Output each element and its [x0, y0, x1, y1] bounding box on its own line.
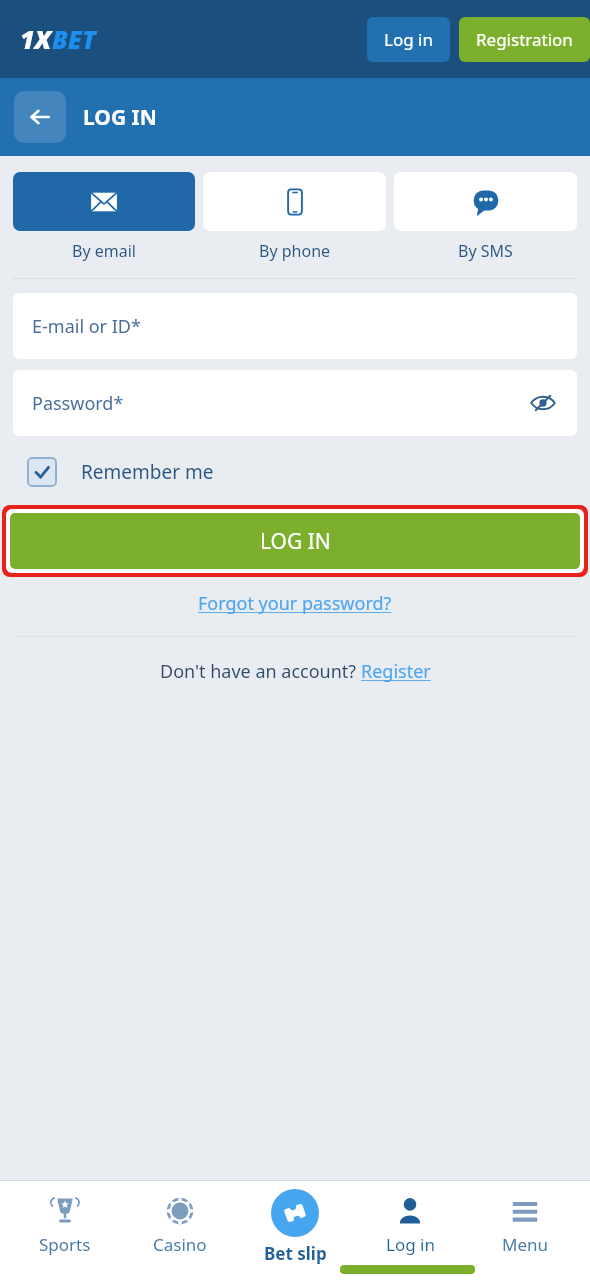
- staticText: BET: [52, 22, 96, 56]
- staticText: Remember me: [81, 459, 214, 485]
- button[interactable]: Sports: [15, 1181, 115, 1256]
- button[interactable]: By email: [13, 172, 195, 262]
- staticText: Register: [361, 659, 431, 684]
- button[interactable]: By SMS: [394, 172, 577, 262]
- staticText: Registration: [476, 28, 573, 51]
- staticText: By phone: [259, 240, 331, 262]
- button[interactable]: Register: [361, 659, 431, 684]
- staticText: By email: [72, 240, 136, 262]
- staticText: 1X: [20, 22, 52, 56]
- button[interactable]: Back: [14, 91, 66, 143]
- button[interactable]: Log in: [360, 1181, 460, 1256]
- staticText: Menu: [502, 1233, 549, 1256]
- staticText: LOG IN: [260, 527, 331, 556]
- staticText: Don't have an account?: [160, 659, 361, 684]
- staticText: Casino: [153, 1233, 207, 1256]
- button[interactable]: By phone: [203, 172, 386, 262]
- button[interactable]: Forgot your password?: [198, 591, 392, 616]
- button[interactable]: Menu: [475, 1181, 575, 1256]
- staticText: Bet slip: [264, 1242, 327, 1265]
- button[interactable]: Log in: [367, 17, 450, 62]
- button[interactable]: Casino: [130, 1181, 230, 1256]
- button[interactable]: Bet slip: [245, 1181, 345, 1265]
- staticText: Log in: [384, 28, 433, 51]
- button[interactable]: Password*: [13, 370, 577, 436]
- staticText: E-mail or ID*: [32, 314, 141, 339]
- staticText: Log in: [386, 1233, 435, 1256]
- button[interactable]: Registration: [459, 17, 590, 62]
- button[interactable]: LOG IN: [10, 513, 580, 569]
- button[interactable]: Show password: [525, 385, 561, 421]
- button[interactable]: Remember me: [27, 457, 214, 487]
- button[interactable]: E-mail or ID*: [13, 293, 577, 359]
- staticText: Sports: [39, 1233, 91, 1256]
- staticText: Forgot your password?: [198, 591, 392, 616]
- staticText: Password*: [32, 391, 124, 416]
- staticText: By SMS: [458, 240, 513, 262]
- staticText: LOG IN: [83, 103, 157, 132]
